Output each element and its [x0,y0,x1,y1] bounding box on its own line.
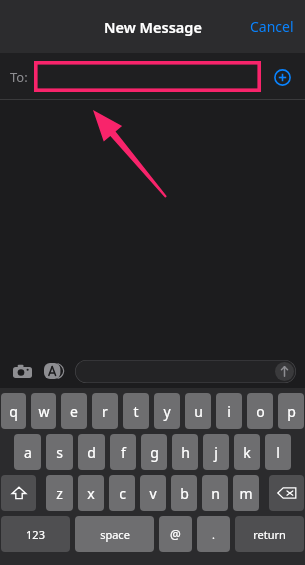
button[interactable]: p [278,393,304,429]
staticText: o [256,402,265,421]
button[interactable]: space [75,516,154,552]
staticText: u [194,402,203,421]
staticText: h [181,443,190,462]
staticText: @ [170,526,181,542]
button[interactable] [34,61,261,92]
staticText: p [287,402,296,421]
staticText: s [56,443,63,462]
button[interactable]: j [203,434,229,470]
button[interactable]: s [46,434,73,470]
button[interactable]: Backspace [269,475,304,511]
button[interactable]: c [109,475,135,511]
staticText: j [214,443,218,462]
staticText: t [133,402,139,421]
button[interactable]: Add contact [269,64,295,90]
button[interactable]: Send [275,362,294,381]
button[interactable]: n [202,475,228,511]
button[interactable]: r [92,393,118,429]
staticText: New Message [104,17,202,37]
staticText: Cancel [250,17,294,36]
button[interactable]: g [141,434,167,470]
staticText: e [70,402,78,421]
staticText: d [87,443,96,462]
button[interactable]: Shift [1,475,36,511]
staticText: c [119,484,126,503]
button[interactable]: y [154,393,180,429]
staticText: return [253,527,286,542]
button[interactable]: q [1,393,26,429]
button[interactable]: w [31,393,56,429]
button[interactable]: i [216,393,242,429]
button[interactable]: d [78,434,105,470]
button[interactable]: o [247,393,273,429]
staticText: x [87,484,95,503]
staticText: g [150,443,159,462]
staticText: 123 [26,527,45,542]
button[interactable]: x [78,475,104,511]
button[interactable]: v [140,475,166,511]
staticText: f [121,443,126,462]
button[interactable]: u [185,393,211,429]
button[interactable]: @ [159,516,192,552]
staticText: v [149,484,157,503]
staticText: y [163,402,171,421]
button[interactable]: f [110,434,136,470]
button[interactable]: 123 [1,516,70,552]
button[interactable]: t [123,393,149,429]
button[interactable]: l [265,434,291,470]
staticText: a [24,443,32,462]
button[interactable]: Send [75,360,296,383]
staticText: k [243,443,251,462]
staticText: n [211,484,220,503]
button[interactable]: . [197,516,230,552]
staticText: z [56,484,63,503]
staticText: q [9,402,18,421]
button[interactable]: return [235,516,304,552]
button[interactable]: b [171,475,197,511]
staticText: i [227,402,231,421]
button[interactable]: k [234,434,260,470]
button[interactable]: a [14,434,41,470]
button[interactable]: h [172,434,198,470]
staticText: l [276,443,280,462]
button[interactable]: m [233,475,259,511]
button[interactable]: z [46,475,73,511]
staticText: w [38,402,50,421]
staticText: b [180,484,189,503]
staticText: . [212,527,215,542]
staticText: m [239,484,253,503]
staticText: r [102,402,108,421]
staticText: To: [10,68,28,86]
button[interactable]: Camera [9,358,35,384]
staticText: space [100,527,130,542]
button[interactable]: App Store [41,358,67,384]
button[interactable]: e [61,393,87,429]
button[interactable]: Cancel [239,8,305,45]
